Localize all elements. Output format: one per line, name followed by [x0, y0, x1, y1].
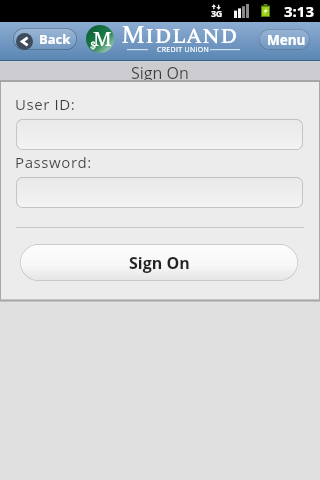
button[interactable]: Sign On [20, 244, 298, 281]
staticText: $ [90, 37, 97, 52]
staticText: Sign On [129, 252, 190, 274]
staticText: 3G [211, 7, 223, 19]
staticText: Midland [121, 17, 238, 55]
button[interactable]: Menu [259, 29, 310, 50]
staticText: M [93, 25, 112, 52]
staticText: 3:13 [284, 1, 314, 21]
button[interactable] [16, 177, 303, 208]
button[interactable]: Back [13, 28, 77, 50]
button[interactable] [16, 119, 303, 150]
staticText: User ID: [15, 94, 76, 114]
staticText: Back [39, 30, 71, 48]
staticText: CREDIT UNION [157, 45, 210, 53]
staticText: Menu [267, 31, 306, 49]
staticText: Sign On [131, 62, 189, 80]
staticText: Password: [15, 152, 92, 172]
